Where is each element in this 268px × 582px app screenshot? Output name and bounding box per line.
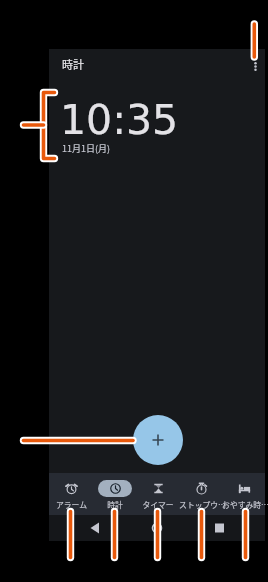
button[interactable]: 時計 (93, 473, 136, 515)
staticText: ストップウ… (179, 499, 222, 510)
button[interactable]: ストップウ… (179, 473, 222, 515)
staticText: アラーム (56, 499, 87, 510)
staticText: 10:35 (60, 96, 179, 144)
button[interactable]: タイマー (136, 473, 179, 515)
staticText: タイマー (142, 499, 174, 510)
button[interactable]: アラーム (49, 473, 93, 515)
staticText: 11月1日(月) (62, 142, 111, 155)
staticText: 時計 (107, 499, 123, 510)
staticText: 時計 (62, 56, 84, 72)
button[interactable]: Add (133, 415, 183, 465)
button[interactable]: More options (243, 56, 265, 78)
staticText: おやすみ時… (222, 499, 265, 510)
button[interactable]: おやすみ時… (222, 473, 265, 515)
